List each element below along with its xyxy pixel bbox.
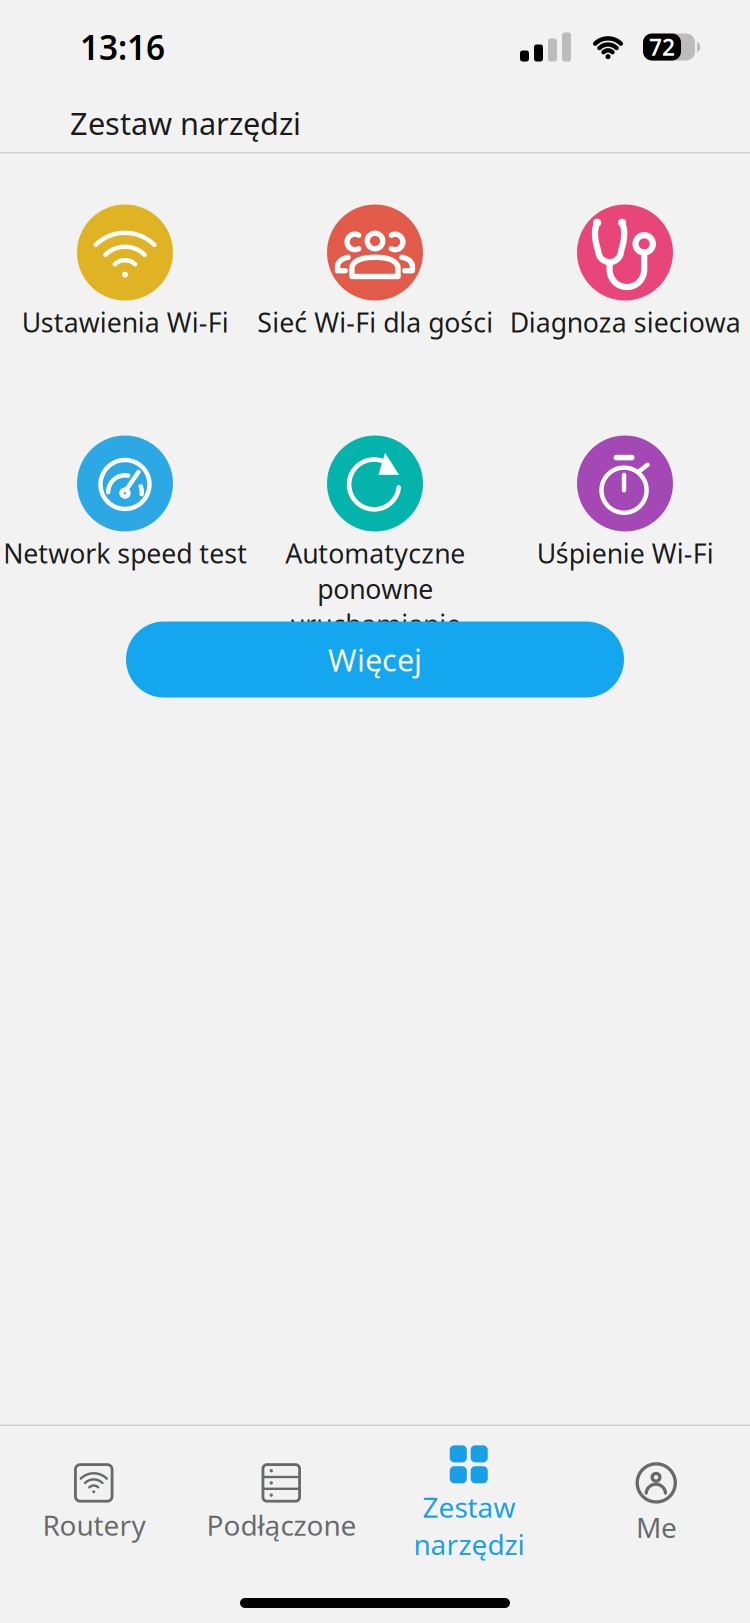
button[interactable]: Więcej — [126, 621, 624, 697]
staticText: Diagnoza sieciowa — [509, 304, 740, 340]
staticText: Sieć Wi-Fi dla gości — [257, 304, 493, 340]
staticText: Podłączone — [206, 1506, 356, 1544]
staticText: Automatyczne ponowne uruchamianie — [285, 535, 465, 642]
staticText: Uśpienie Wi-Fi — [536, 535, 713, 571]
button[interactable]: Automatyczne ponowne uruchamianie — [250, 435, 500, 642]
staticText: Network speed test — [3, 535, 247, 571]
staticText: 13:16 — [80, 25, 165, 69]
button[interactable]: Diagnoza sieciowa — [500, 204, 750, 347]
staticText: Zestaw narzędzi — [413, 1488, 524, 1563]
button[interactable]: Routery — [0, 1426, 187, 1573]
button[interactable]: Uśpienie Wi-Fi — [500, 435, 750, 642]
button[interactable]: Sieć Wi-Fi dla gości — [250, 204, 500, 347]
button[interactable]: Network speed test — [0, 435, 250, 642]
button[interactable]: Podłączone — [187, 1426, 375, 1573]
staticText: Więcej — [328, 639, 422, 680]
staticText: 72 — [649, 32, 675, 62]
staticText: Me — [636, 1509, 677, 1546]
button[interactable]: Zestaw narzędzi — [375, 1426, 562, 1573]
staticText: Routery — [42, 1506, 145, 1544]
button[interactable]: Me — [562, 1426, 750, 1573]
staticText: Ustawienia Wi-Fi — [21, 304, 228, 340]
button[interactable]: Ustawienia Wi-Fi — [0, 204, 250, 347]
staticText: Zestaw narzędzi — [70, 103, 301, 143]
